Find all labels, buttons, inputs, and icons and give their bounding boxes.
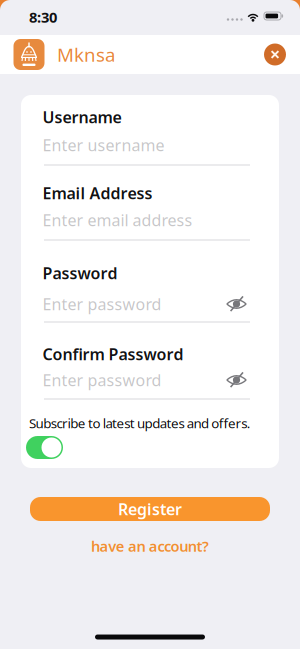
staticText: Enter password <box>42 369 161 391</box>
button[interactable]: Enter email address <box>21 210 279 230</box>
button[interactable]: have an account? <box>91 536 209 556</box>
staticText: Username <box>42 106 121 128</box>
staticText: have an account? <box>91 536 209 556</box>
button[interactable]: Register <box>30 497 270 521</box>
staticText: Mknsa <box>57 42 115 67</box>
button[interactable]: Close <box>264 43 286 65</box>
staticText: Enter password <box>42 293 161 315</box>
staticText: Confirm Password <box>42 343 183 365</box>
staticText: 8:30 <box>29 7 57 27</box>
button[interactable]: Enter password <box>21 370 279 390</box>
button[interactable]: Enter password <box>21 294 279 314</box>
staticText: Register <box>118 498 182 520</box>
staticText: Password <box>42 262 117 284</box>
staticText: Email Address <box>42 182 152 204</box>
button[interactable]: Enter username <box>21 135 279 155</box>
staticText: Enter email address <box>42 209 192 231</box>
button[interactable]: Show password <box>226 371 247 388</box>
staticText: Subscribe to latest updates and offers. <box>29 414 251 432</box>
staticText: Enter username <box>42 134 164 156</box>
button[interactable]: Subscribe to latest updates and offers <box>26 436 63 459</box>
button[interactable]: Show password <box>226 295 247 312</box>
